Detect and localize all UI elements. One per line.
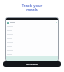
button[interactable]: Get started <box>3 61 61 67</box>
staticText: Get started <box>26 63 38 66</box>
staticText: Track your meals <box>0 3 64 12</box>
